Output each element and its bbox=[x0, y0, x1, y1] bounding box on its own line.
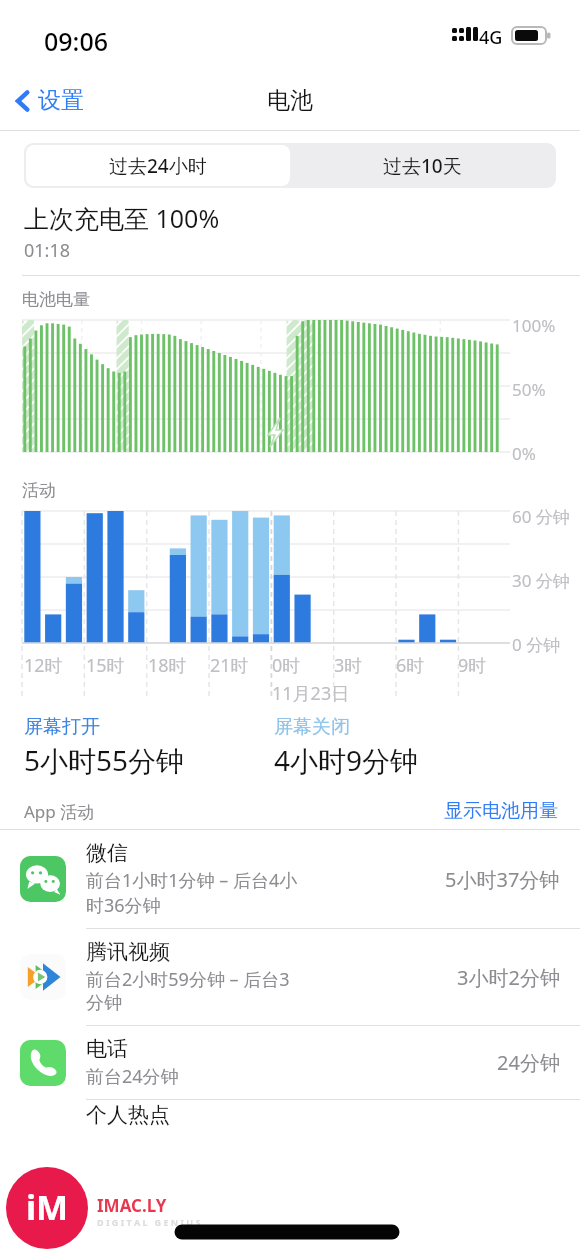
staticText: 前台2小时59分钟 – 后台3 bbox=[86, 967, 290, 992]
staticText: 前台1小时1分钟 – 后台4小 bbox=[86, 868, 298, 893]
button[interactable]: 设置 bbox=[8, 80, 90, 121]
staticText: 电池电量 bbox=[22, 289, 90, 310]
button[interactable]: App icon bbox=[0, 929, 580, 1025]
staticText: 5小时55分钟 bbox=[24, 741, 185, 779]
other: App icon bbox=[20, 1040, 66, 1086]
other: App icon bbox=[20, 856, 66, 902]
staticText: 屏幕打开 bbox=[24, 715, 100, 739]
staticText: 显示电池用量 bbox=[444, 799, 558, 823]
staticText: 21时 bbox=[210, 653, 249, 678]
staticText: 100% bbox=[512, 314, 556, 337]
staticText: 6时 bbox=[396, 653, 425, 678]
staticText: 0% bbox=[512, 442, 536, 465]
staticText: 12时 bbox=[24, 653, 63, 678]
staticText: 15时 bbox=[86, 653, 125, 678]
staticText: 活动 bbox=[22, 480, 56, 501]
staticText: 18时 bbox=[148, 653, 187, 678]
staticText: 3小时2分钟 bbox=[457, 964, 560, 991]
staticText: 设置 bbox=[38, 86, 84, 115]
staticText: 时36分钟 bbox=[86, 893, 161, 918]
staticText: 腾讯视频 bbox=[86, 939, 170, 965]
button[interactable]: 过去24小时 bbox=[26, 145, 290, 186]
staticText: 分钟 bbox=[86, 992, 122, 1015]
button[interactable]: 显示电池用量 bbox=[444, 799, 558, 823]
staticText: 5小时37分钟 bbox=[445, 866, 560, 893]
staticText: 个人热点 bbox=[86, 1102, 170, 1128]
staticText: D I G I T A L G E N I U S bbox=[97, 1216, 201, 1228]
button[interactable]: App icon bbox=[0, 1026, 580, 1099]
button[interactable]: 过去10天 bbox=[290, 145, 554, 186]
staticText: 50% bbox=[512, 378, 546, 401]
staticText: App 活动 bbox=[24, 800, 95, 823]
staticText: 过去24小时 bbox=[109, 153, 207, 179]
staticText: 01:18 bbox=[24, 238, 71, 263]
staticText: 电话 bbox=[86, 1036, 128, 1062]
staticText: 9时 bbox=[458, 653, 487, 678]
other: App icon bbox=[20, 954, 66, 1000]
staticText: 电池 bbox=[267, 86, 313, 115]
staticText: 11月23日 bbox=[272, 681, 350, 706]
staticText: 前台24分钟 bbox=[86, 1064, 179, 1089]
staticText: 0 分钟 bbox=[512, 633, 561, 656]
staticText: 09:06 bbox=[44, 24, 109, 58]
staticText: 4G bbox=[479, 25, 503, 50]
staticText: 4小时9分钟 bbox=[274, 741, 419, 779]
staticText: 0时 bbox=[272, 653, 301, 678]
button[interactable]: App icon bbox=[0, 830, 580, 928]
staticText: 60 分钟 bbox=[512, 505, 570, 528]
staticText: 24分钟 bbox=[497, 1049, 560, 1076]
staticText: iM bbox=[22, 1184, 72, 1230]
staticText: IMAC.LY bbox=[97, 1194, 167, 1217]
staticText: 微信 bbox=[86, 840, 128, 866]
staticText: 30 分钟 bbox=[512, 569, 570, 592]
staticText: 过去10天 bbox=[383, 153, 462, 179]
staticText: 3时 bbox=[334, 653, 363, 678]
staticText: 上次充电至 100% bbox=[24, 201, 220, 235]
staticText: 屏幕关闭 bbox=[274, 715, 350, 739]
